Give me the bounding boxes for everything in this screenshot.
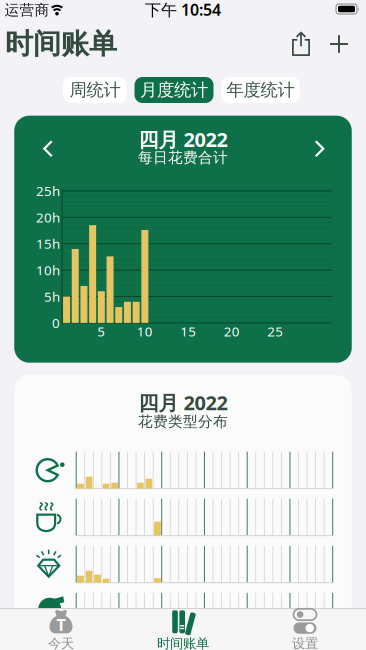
staticText: 25h [36, 182, 60, 200]
staticText: 四月 2022 [138, 389, 227, 416]
button[interactable]: 年度统计 [221, 77, 300, 103]
staticText: 今天 [48, 635, 74, 650]
staticText: 下午 10:54 [145, 0, 221, 20]
staticText: 时间账单 [157, 635, 209, 650]
staticText: 5h [44, 288, 60, 305]
staticText: 15h [36, 235, 60, 252]
staticText: 设置 [292, 635, 318, 650]
button[interactable]: 添加 [329, 34, 348, 53]
staticText: 四月 2022 [138, 126, 227, 152]
button[interactable]: T [16, 609, 106, 650]
button[interactable]: 上一月 [43, 140, 53, 157]
staticText: 15 [180, 322, 196, 340]
staticText: 10 [137, 322, 153, 340]
staticText: 0 [52, 314, 60, 332]
staticText: 10h [36, 261, 60, 279]
button[interactable]: 月度统计 [134, 77, 213, 103]
staticText: 20h [36, 208, 60, 226]
button[interactable]: 周统计 [63, 77, 127, 103]
button[interactable]: 设置 [260, 609, 350, 650]
staticText: T [56, 614, 65, 635]
staticText: 花费类型分布 [138, 412, 228, 430]
staticText: 25 [267, 322, 283, 340]
staticText: 年度统计 [226, 79, 294, 101]
staticText: 时间账单 [5, 27, 117, 61]
button[interactable]: 分享 [291, 31, 311, 56]
button[interactable]: 下一月 [315, 140, 325, 157]
staticText: 运营商 [4, 1, 49, 19]
staticText: 月度统计 [140, 79, 208, 101]
staticText: 每日花费合计 [138, 149, 228, 167]
staticText: 周统计 [69, 79, 120, 101]
staticText: 20 [224, 322, 240, 340]
button[interactable]: 时间账单 [133, 609, 233, 650]
staticText: 5 [97, 322, 105, 340]
